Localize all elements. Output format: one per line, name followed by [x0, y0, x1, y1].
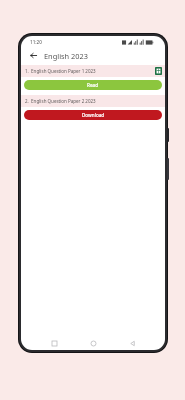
button[interactable]: Download — [24, 110, 162, 120]
button[interactable]: Back — [126, 337, 138, 349]
staticText: 11:20 — [30, 39, 42, 45]
button[interactable]: 2. English Question Paper 2 2023 — [21, 95, 165, 107]
other: Open document — [155, 67, 162, 75]
button[interactable]: 1. English Question Paper 1 2023 — [21, 65, 165, 77]
staticText: English 2023 — [44, 51, 88, 61]
button[interactable]: Recents — [48, 337, 60, 349]
button[interactable]: Home — [87, 337, 99, 349]
button[interactable]: Read — [24, 80, 162, 90]
staticText: Read — [87, 82, 99, 88]
staticText: 1. English Question Paper 1 2023 — [25, 68, 96, 74]
staticText: 2. English Question Paper 2 2023 — [25, 98, 96, 104]
staticText: Download — [82, 112, 105, 118]
button[interactable]: Back — [27, 49, 40, 62]
